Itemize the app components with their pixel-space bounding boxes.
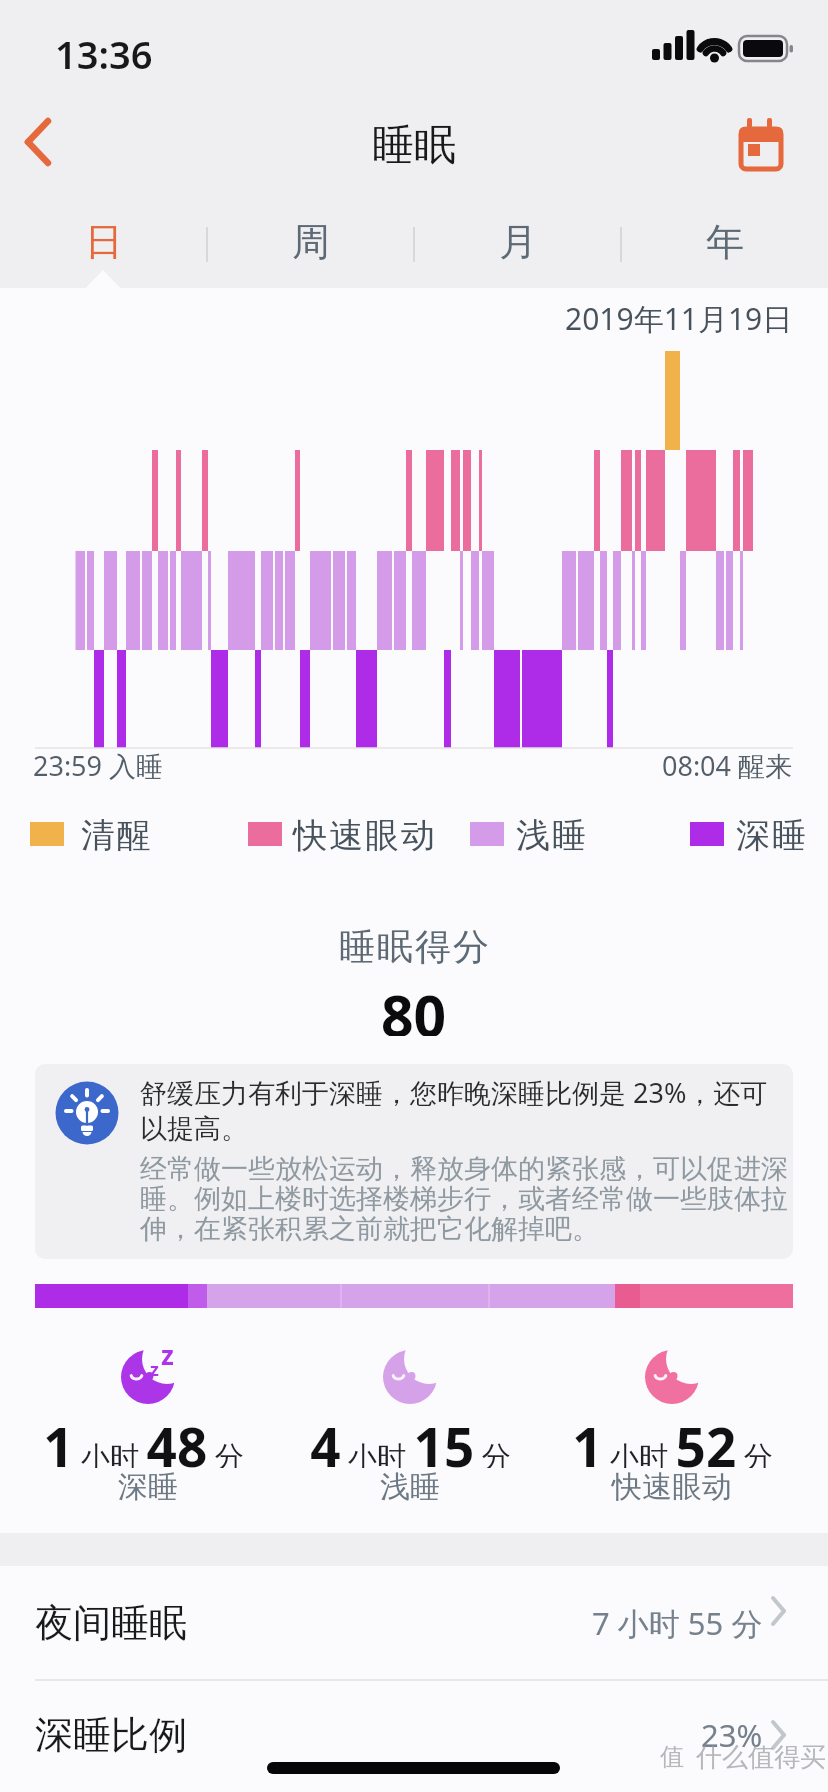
staticText: 睡眠	[372, 119, 456, 172]
staticText: 快速眼动	[612, 1468, 732, 1506]
button[interactable]: 深睡比例	[0, 1680, 828, 1792]
button[interactable]	[726, 112, 796, 182]
staticText: 13:36	[55, 28, 153, 78]
staticText: 年	[706, 218, 744, 266]
button[interactable]: 日	[0, 196, 207, 288]
staticText: z	[150, 1357, 159, 1381]
staticText: 夜间睡眠	[35, 1599, 187, 1647]
staticText: 值	[660, 1742, 684, 1772]
staticText: 7 小时 55 分	[592, 1602, 763, 1644]
staticText: 80	[381, 976, 447, 1036]
staticText: 08:04 醒来	[662, 747, 793, 784]
staticText: 2019年11月19日	[565, 298, 793, 339]
staticText: 日	[85, 218, 123, 266]
staticText: 1 小时 48 分	[43, 1410, 244, 1468]
staticText: 浅睡	[515, 814, 587, 857]
staticText: 经常做一些放松运动，释放身体的紧张感，可以促进深睡。例如上楼时选择楼梯步行，或者…	[140, 1152, 790, 1246]
staticText: 23:59 入睡	[33, 747, 164, 784]
staticText: 深睡	[118, 1468, 178, 1506]
staticText: z	[161, 1337, 174, 1367]
staticText: 什么值得买	[696, 1741, 826, 1774]
button[interactable]: 夜间睡眠	[0, 1566, 828, 1680]
button[interactable]: 月	[414, 196, 621, 288]
button[interactable]: 周	[207, 196, 414, 288]
staticText: 23%	[701, 1714, 763, 1756]
staticText: 舒缓压力有利于深睡，您昨晚深睡比例是 23%，还可以提高。	[140, 1074, 790, 1146]
button[interactable]	[8, 106, 72, 178]
staticText: 快速眼动	[292, 814, 436, 857]
staticText: 深睡比例	[35, 1711, 187, 1759]
staticText: 睡眠得分	[338, 924, 490, 969]
staticText: 周	[292, 218, 330, 266]
staticText: 清醒	[80, 814, 152, 857]
staticText: 深睡	[735, 814, 807, 857]
staticText: 浅睡	[380, 1468, 440, 1506]
staticText: 1 小时 52 分	[572, 1410, 773, 1468]
button[interactable]: 年	[621, 196, 828, 288]
staticText: 4 小时 15 分	[310, 1410, 511, 1468]
staticText: 月	[499, 218, 537, 266]
